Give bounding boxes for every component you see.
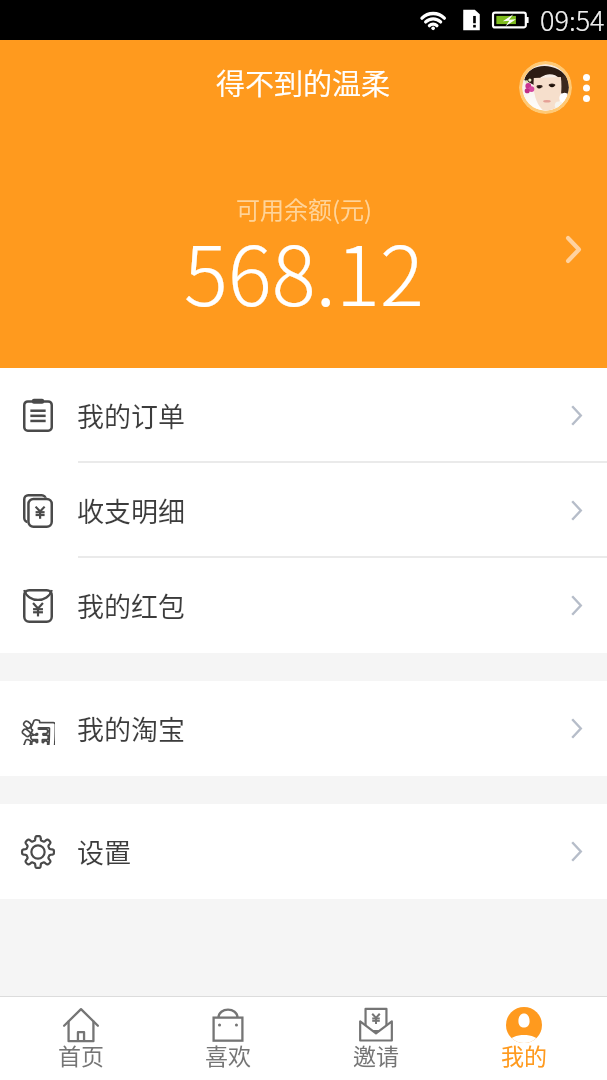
- staticText: 我的订单: [77, 396, 185, 435]
- staticText: 09:54: [540, 0, 605, 39]
- staticText: 我的红包: [77, 586, 185, 625]
- staticText: 我的淘宝: [77, 709, 185, 748]
- button[interactable]: 喜欢: [154, 997, 302, 1080]
- staticText: 喜欢: [205, 1038, 251, 1071]
- button[interactable]: 收支明细: [0, 463, 607, 558]
- staticText: 568.12: [184, 211, 424, 330]
- button[interactable]: 淘: [0, 681, 607, 776]
- staticText: 设置: [77, 832, 131, 871]
- staticText: 可用余额(元): [236, 191, 372, 226]
- button[interactable]: 我的红包: [0, 558, 607, 653]
- button[interactable]: Balance details: [545, 221, 601, 277]
- button[interactable]: 我的: [450, 997, 598, 1080]
- button[interactable]: 首页: [7, 997, 154, 1080]
- staticText: 邀请: [353, 1038, 399, 1071]
- button[interactable]: 设置: [0, 804, 607, 899]
- staticText: 收支明细: [77, 491, 185, 530]
- button[interactable]: 我的订单: [0, 368, 607, 463]
- staticText: 首页: [58, 1038, 104, 1071]
- button[interactable]: More options: [565, 61, 607, 114]
- staticText: 我的: [501, 1038, 547, 1071]
- button[interactable]: Profile avatar: [519, 61, 572, 114]
- button[interactable]: 邀请: [302, 997, 450, 1080]
- staticText: 淘: [21, 711, 55, 745]
- staticText: 得不到的温柔: [216, 61, 391, 103]
